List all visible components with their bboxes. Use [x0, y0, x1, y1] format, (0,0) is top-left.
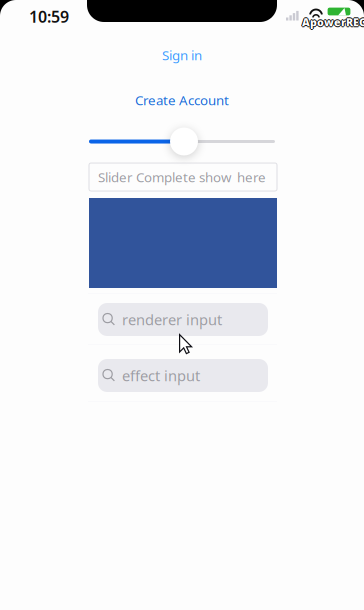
staticText: ApowerREC [302, 16, 364, 30]
staticText: ApowerREC [301, 15, 364, 29]
staticText: ApowerREC [302, 14, 364, 28]
staticText: renderer input [122, 310, 222, 329]
button[interactable]: renderer input [98, 303, 268, 336]
staticText: effect input [122, 366, 200, 385]
staticText: Create Account [135, 91, 229, 109]
button[interactable]: Sign in [122, 44, 242, 66]
staticText: ApowerREC [303, 15, 364, 29]
staticText: 10:59 [29, 6, 69, 27]
staticText: Sign in [162, 46, 202, 64]
button[interactable]: effect input [98, 359, 268, 392]
button[interactable]: Create Account [102, 89, 262, 111]
staticText: ApowerREC [302, 15, 364, 29]
staticText: Slider Complete show here [98, 168, 266, 186]
